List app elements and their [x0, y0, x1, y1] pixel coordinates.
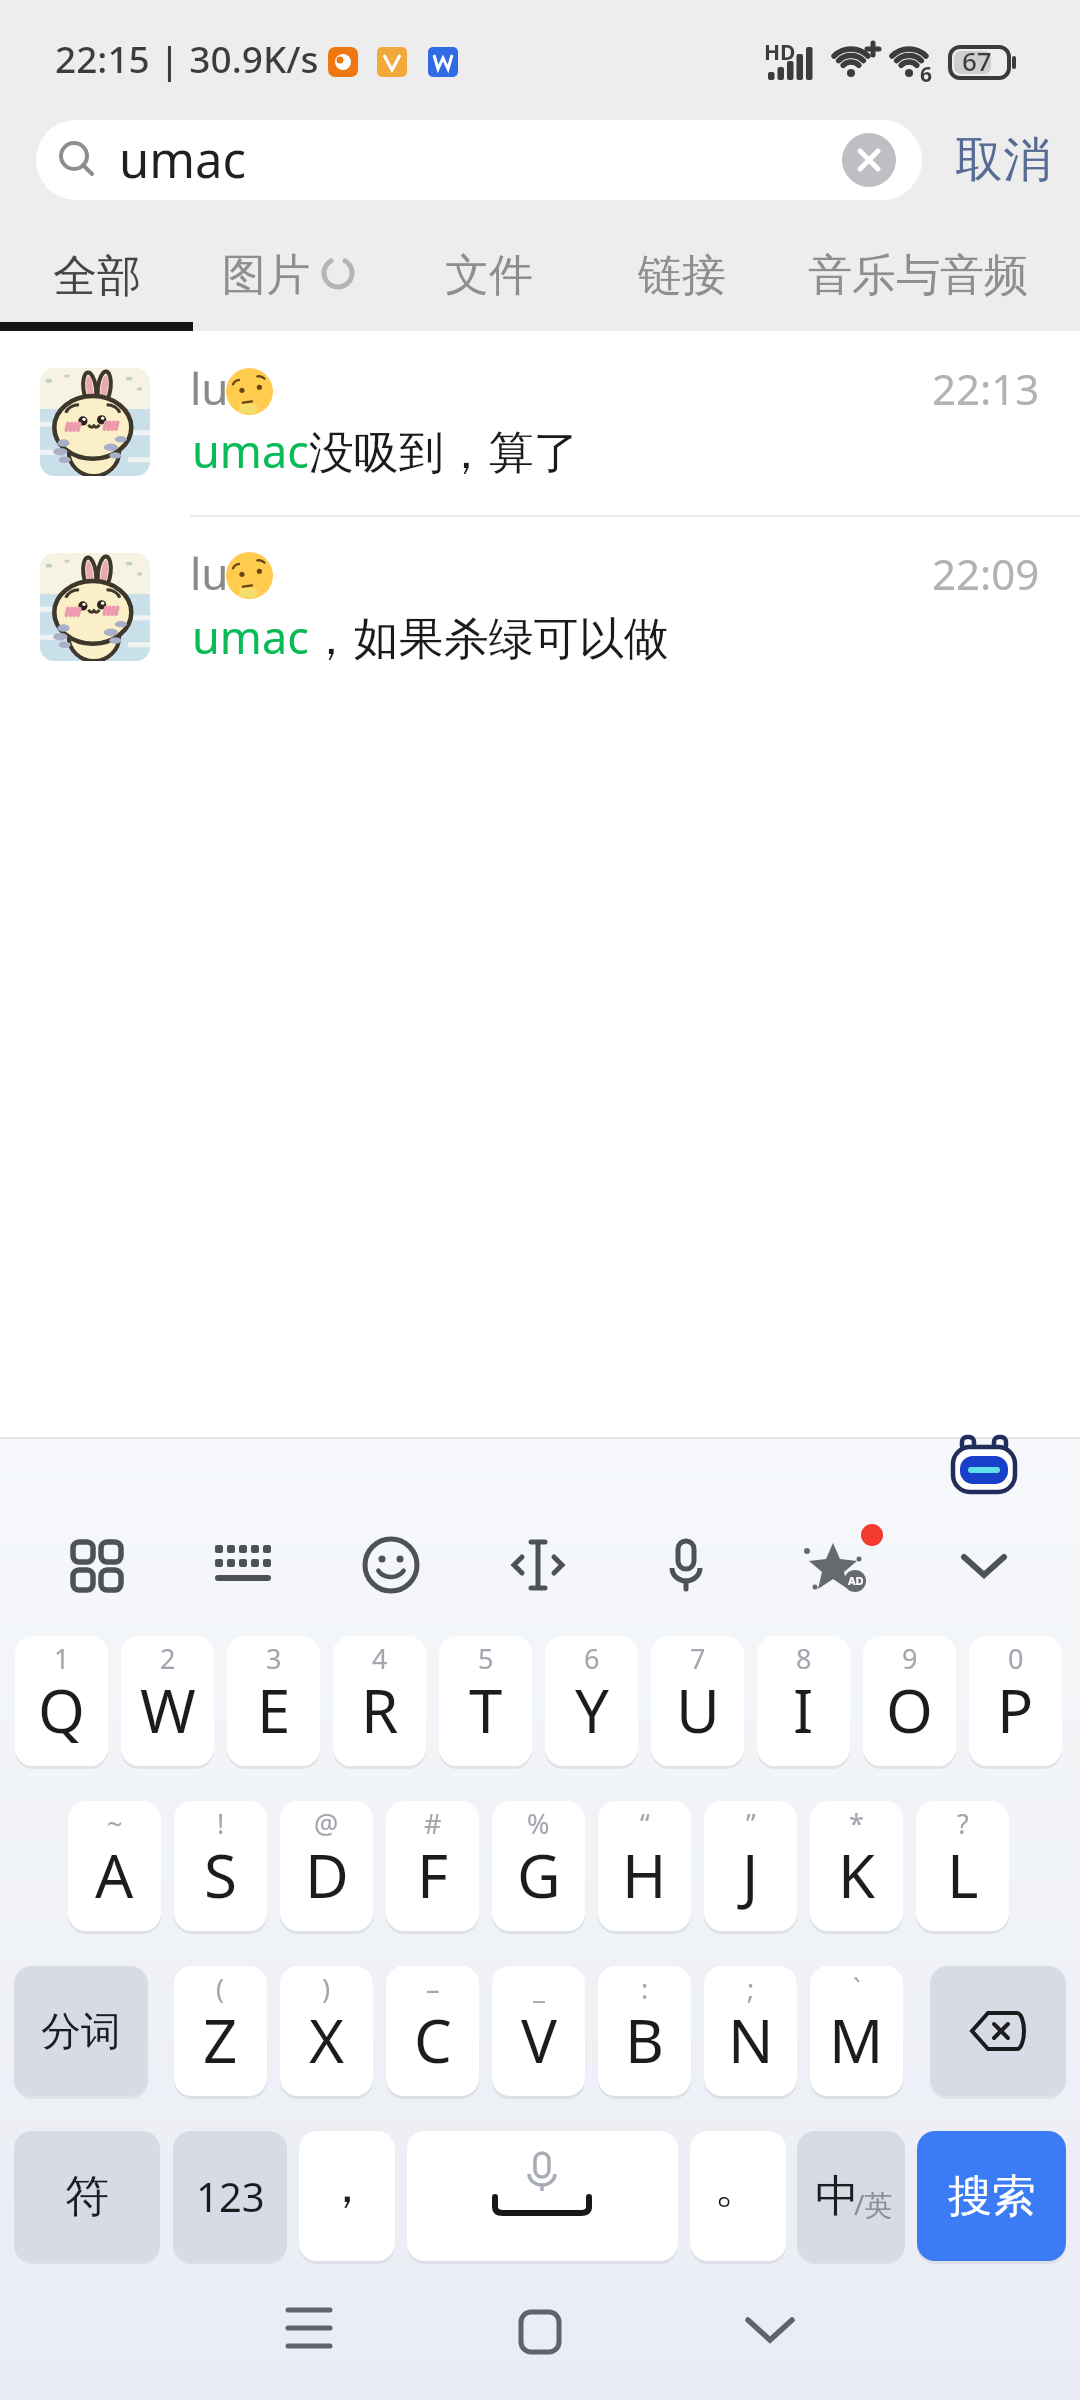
staticText: T	[469, 1669, 503, 1751]
staticText: J	[742, 1834, 759, 1916]
button[interactable]: 2	[121, 1636, 214, 1766]
button[interactable]: (	[174, 1966, 267, 2096]
button[interactable]: 取消	[940, 122, 1065, 198]
staticText: 6	[584, 1640, 600, 1677]
staticText: S	[204, 1834, 237, 1916]
button[interactable]	[780, 230, 1030, 331]
staticText: 搜索	[948, 2169, 1036, 2224]
staticText: 6	[920, 60, 933, 89]
button[interactable]: 5	[439, 1636, 532, 1766]
button[interactable]: !	[174, 1801, 267, 1931]
button[interactable]: 符	[14, 2131, 160, 2261]
button[interactable]: “	[598, 1801, 691, 1931]
button[interactable]: 6	[545, 1636, 638, 1766]
button[interactable]: 。	[690, 2131, 786, 2261]
staticText: 0	[1008, 1640, 1024, 1677]
button[interactable]	[952, 1437, 1016, 1493]
staticText: `	[853, 1970, 861, 2007]
staticText: X	[309, 1999, 345, 2081]
button[interactable]	[650, 1529, 722, 1601]
button[interactable]	[502, 1529, 574, 1601]
button[interactable]	[842, 133, 896, 187]
button[interactable]	[407, 2131, 678, 2261]
button[interactable]: _	[492, 1966, 585, 2096]
button[interactable]	[480, 2290, 600, 2380]
button[interactable]: 3	[227, 1636, 320, 1766]
button[interactable]: 中	[797, 2131, 905, 2261]
button[interactable]	[0, 517, 1080, 697]
button[interactable]	[355, 1529, 427, 1601]
staticText: #	[424, 1805, 442, 1842]
button[interactable]	[207, 1529, 279, 1601]
button[interactable]: ;	[704, 1966, 797, 2096]
button[interactable]: @	[280, 1801, 373, 1931]
staticText: umac，如果杀绿可以做	[192, 606, 669, 667]
staticText: U	[676, 1669, 720, 1751]
staticText: 中	[815, 2169, 859, 2224]
staticText: 取消	[955, 130, 1051, 190]
button[interactable]: %	[492, 1801, 585, 1931]
button[interactable]: –	[386, 1966, 479, 2096]
staticText: _	[533, 1970, 545, 2007]
staticText: 1	[54, 1640, 70, 1677]
button[interactable]: )	[280, 1966, 373, 2096]
button[interactable]: umac	[36, 120, 922, 200]
button[interactable]: ，	[299, 2131, 395, 2261]
button[interactable]	[193, 230, 373, 331]
staticText: I	[793, 1669, 814, 1751]
button[interactable]: :	[598, 1966, 691, 2096]
button[interactable]: 0	[969, 1636, 1062, 1766]
button[interactable]: 9	[863, 1636, 956, 1766]
staticText: B	[625, 1999, 664, 2081]
button[interactable]: #	[386, 1801, 479, 1931]
button[interactable]: ~	[68, 1801, 161, 1931]
button[interactable]	[40, 553, 150, 661]
staticText: E	[257, 1669, 291, 1751]
button[interactable]	[40, 368, 150, 476]
staticText: *	[849, 1805, 864, 1842]
button[interactable]: 4	[333, 1636, 426, 1766]
button[interactable]	[710, 2290, 830, 2380]
staticText: W	[140, 1669, 196, 1751]
button[interactable]: AD	[797, 1529, 869, 1601]
button[interactable]: 分词	[14, 1966, 148, 2096]
button[interactable]: ?	[916, 1801, 1009, 1931]
staticText: lu	[190, 358, 229, 418]
staticText: 22:15 | 30.9K/s	[55, 33, 319, 83]
staticText: 123	[196, 2169, 265, 2223]
staticText: umac	[119, 126, 247, 193]
staticText: 8	[796, 1640, 812, 1677]
staticText: 4	[372, 1640, 388, 1677]
button[interactable]: 全部	[0, 230, 193, 331]
staticText: !	[217, 1805, 225, 1842]
button[interactable]	[60, 1529, 132, 1601]
staticText: P	[997, 1669, 1034, 1751]
staticText: V	[521, 1999, 557, 2081]
staticText: ~	[107, 1805, 123, 1842]
staticText: :	[641, 1970, 649, 2007]
button[interactable]: ”	[704, 1801, 797, 1931]
button[interactable]	[400, 230, 570, 331]
button[interactable]	[948, 1529, 1020, 1601]
staticText: K	[838, 1834, 876, 1916]
button[interactable]	[0, 345, 1080, 516]
button[interactable]: 7	[651, 1636, 744, 1766]
button[interactable]: *	[810, 1801, 903, 1931]
button[interactable]	[595, 230, 765, 331]
staticText: 。	[714, 2156, 762, 2216]
button[interactable]	[250, 2290, 370, 2380]
staticText: 22:13	[932, 360, 1040, 417]
button[interactable]: 搜索	[917, 2131, 1066, 2261]
button[interactable]: 8	[757, 1636, 850, 1766]
staticText: ”	[746, 1805, 756, 1842]
staticText: Y	[575, 1669, 609, 1751]
staticText: 7	[690, 1640, 706, 1677]
staticText: 3	[266, 1640, 282, 1677]
button[interactable]: `	[810, 1966, 903, 2096]
staticText: )	[322, 1970, 331, 2007]
staticText: G	[517, 1834, 561, 1916]
staticText: A	[95, 1834, 134, 1916]
button[interactable]	[930, 1966, 1066, 2096]
button[interactable]: 123	[173, 2131, 287, 2261]
button[interactable]: 1	[15, 1636, 108, 1766]
